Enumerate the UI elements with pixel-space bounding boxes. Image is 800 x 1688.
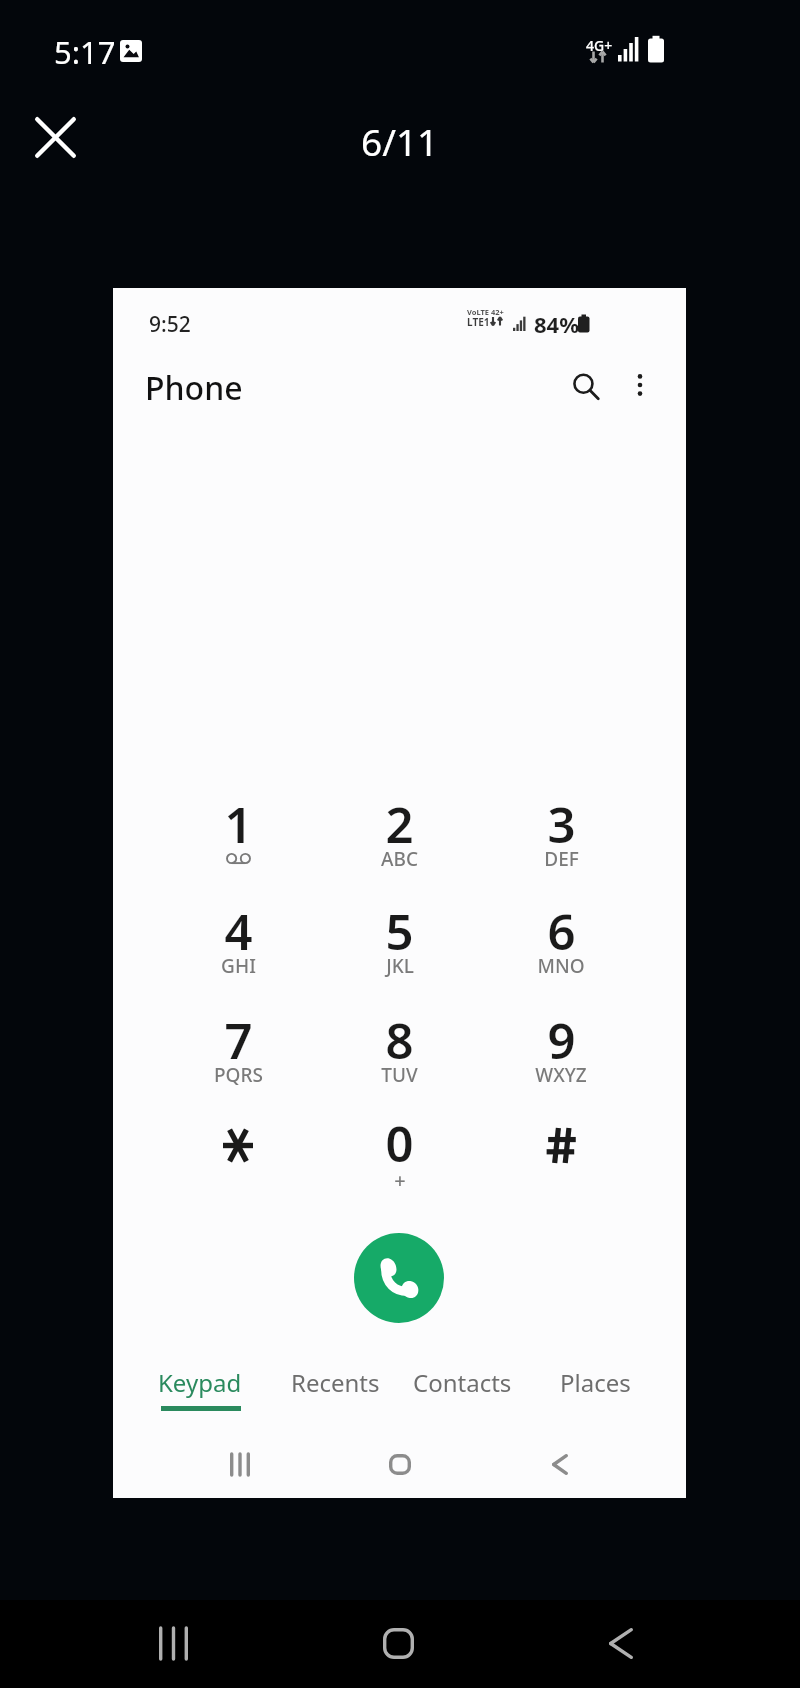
- staticText: 6/11: [361, 116, 439, 166]
- staticText: 4: [224, 898, 253, 965]
- button[interactable]: Close: [20, 102, 90, 172]
- staticText: Contacts: [413, 1366, 512, 1399]
- staticText: DEF: [544, 846, 579, 872]
- staticText: 3: [547, 791, 576, 858]
- staticText: MNO: [537, 953, 585, 979]
- button[interactable]: Recents: [210, 1434, 270, 1494]
- staticText: PQRS: [214, 1062, 263, 1088]
- button[interactable]: [180, 1110, 296, 1205]
- button[interactable]: 2: [341, 791, 457, 886]
- staticText: 84%: [534, 309, 580, 339]
- staticText: 9: [547, 1007, 576, 1074]
- staticText: 1: [224, 791, 253, 858]
- staticText: VoLTE: [467, 307, 489, 317]
- button[interactable]: 8: [341, 1007, 457, 1102]
- button[interactable]: Home: [370, 1434, 430, 1494]
- button[interactable]: Pound: [503, 1107, 619, 1183]
- button[interactable]: Recents: [273, 1366, 397, 1416]
- button[interactable]: Recents: [143, 1613, 203, 1673]
- button[interactable]: Back: [591, 1613, 651, 1673]
- button[interactable]: Home: [368, 1613, 428, 1673]
- staticText: Phone: [145, 366, 243, 410]
- staticText: 5:17: [54, 31, 116, 73]
- staticText: JKL: [386, 953, 414, 979]
- staticText: 5: [385, 898, 414, 965]
- staticText: 0: [385, 1110, 414, 1177]
- button[interactable]: 3: [503, 791, 619, 886]
- button[interactable]: Search: [558, 359, 614, 415]
- staticText: WXYZ: [535, 1062, 587, 1088]
- staticText: ABC: [381, 846, 418, 872]
- button[interactable]: 9: [503, 1007, 619, 1102]
- button[interactable]: Star: [180, 1107, 296, 1183]
- button[interactable]: 6: [503, 898, 619, 993]
- staticText: Recents: [291, 1366, 380, 1399]
- staticText: Places: [560, 1366, 631, 1399]
- button[interactable]: 7: [180, 1007, 296, 1102]
- staticText: 9:52: [149, 310, 191, 339]
- button[interactable]: 0: [341, 1110, 457, 1205]
- staticText: 42+: [491, 307, 504, 317]
- staticText: 6: [547, 898, 576, 965]
- staticText: 8: [385, 1007, 414, 1074]
- staticText: 7: [224, 1007, 253, 1074]
- button[interactable]: 5: [341, 898, 457, 993]
- button[interactable]: Places: [533, 1366, 657, 1416]
- button[interactable]: 1: [180, 791, 296, 886]
- staticText: TUV: [381, 1062, 418, 1088]
- button[interactable]: Contacts: [400, 1366, 524, 1416]
- button[interactable]: [503, 1110, 619, 1205]
- button[interactable]: Call: [354, 1233, 444, 1323]
- button[interactable]: Back: [530, 1434, 590, 1494]
- staticText: +: [394, 1167, 406, 1194]
- staticText: 4G+: [586, 36, 613, 55]
- staticText: GHI: [221, 953, 256, 979]
- staticText: LTE1: [467, 315, 490, 329]
- button[interactable]: 4: [180, 898, 296, 993]
- staticText: 2: [385, 791, 414, 858]
- button[interactable]: More options: [612, 357, 668, 413]
- button[interactable]: Keypad: [138, 1366, 262, 1416]
- staticText: Keypad: [158, 1366, 242, 1399]
